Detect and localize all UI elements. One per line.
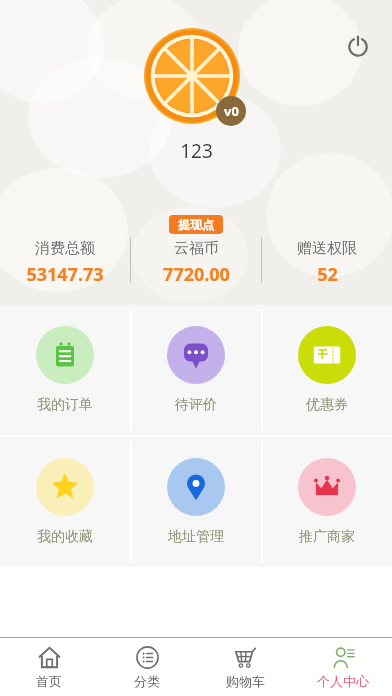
button[interactable]: 购物车 xyxy=(196,638,294,696)
staticText: v0 xyxy=(224,102,239,120)
button[interactable]: 云福币 xyxy=(131,237,261,289)
button[interactable]: 消费总额 xyxy=(0,237,130,289)
staticText: 7720.00 xyxy=(163,262,230,287)
staticText: 我的订单 xyxy=(37,396,93,414)
button[interactable]: 地址管理 xyxy=(130,437,261,567)
staticText: 待评价 xyxy=(175,396,217,414)
button[interactable]: 分类 xyxy=(98,638,196,696)
button[interactable]: 提现点 xyxy=(169,215,223,234)
staticText: 53147.73 xyxy=(26,262,104,287)
staticText: 个人中心 xyxy=(317,673,369,689)
staticText: 首页 xyxy=(36,673,62,689)
button[interactable]: 赠送权限 xyxy=(262,237,392,289)
button[interactable]: Power / Log out xyxy=(338,26,378,66)
staticText: 消费总额 xyxy=(35,239,95,258)
staticText: 分类 xyxy=(134,673,160,689)
staticText: 123 xyxy=(180,138,213,164)
button[interactable]: Avatar xyxy=(144,28,248,132)
staticText: 推广商家 xyxy=(299,528,355,546)
staticText: 云福币 xyxy=(174,239,219,258)
staticText: 地址管理 xyxy=(168,528,224,546)
button[interactable]: 推广商家 xyxy=(261,437,392,567)
staticText: 52 xyxy=(317,262,338,287)
staticText: 我的收藏 xyxy=(37,528,93,546)
button[interactable]: 优惠券 xyxy=(261,305,392,435)
button[interactable]: 待评价 xyxy=(130,305,261,435)
staticText: 赠送权限 xyxy=(297,239,357,258)
button[interactable]: 个人中心 xyxy=(294,638,392,696)
button[interactable]: 首页 xyxy=(0,638,98,696)
button[interactable]: 我的订单 xyxy=(0,305,130,435)
button[interactable]: 我的收藏 xyxy=(0,437,130,567)
staticText: 优惠券 xyxy=(306,396,348,414)
staticText: 提现点 xyxy=(178,217,214,232)
staticText: 购物车 xyxy=(226,673,265,689)
